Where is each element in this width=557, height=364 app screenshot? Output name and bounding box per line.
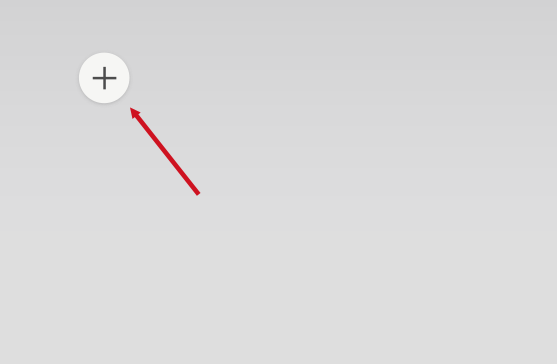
button[interactable]: Add — [79, 53, 129, 103]
